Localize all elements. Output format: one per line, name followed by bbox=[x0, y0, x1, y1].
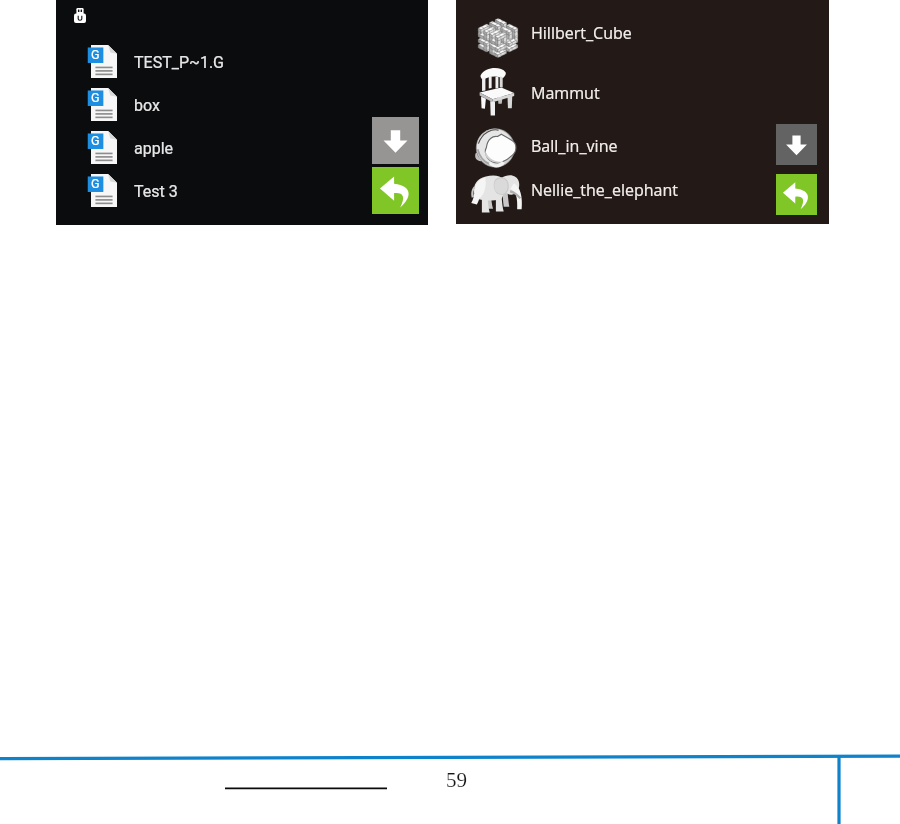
button[interactable]: Ball_in_vine bbox=[462, 118, 762, 178]
button[interactable]: Download bbox=[776, 124, 817, 165]
button[interactable]: Nellie_the_elephant bbox=[462, 162, 762, 218]
staticText: box bbox=[134, 96, 160, 115]
staticText: Hillbert_Cube bbox=[531, 22, 632, 44]
staticText: Test 3 bbox=[134, 182, 178, 201]
button[interactable]: G bbox=[76, 40, 336, 82]
button[interactable]: USB storage bbox=[74, 7, 86, 24]
button[interactable]: Mammut bbox=[462, 61, 762, 120]
button[interactable]: Download bbox=[372, 117, 419, 164]
staticText: Mammut bbox=[531, 82, 600, 104]
staticText: apple bbox=[134, 139, 174, 158]
staticText: G bbox=[91, 90, 100, 105]
staticText: G bbox=[91, 133, 100, 148]
button[interactable]: G bbox=[76, 169, 336, 211]
button[interactable]: G bbox=[76, 83, 336, 125]
button[interactable]: Back bbox=[372, 167, 419, 214]
button[interactable]: G bbox=[76, 126, 336, 168]
button[interactable]: Hillbert_Cube bbox=[462, 11, 762, 65]
staticText: 59 bbox=[446, 768, 467, 791]
button[interactable]: Back bbox=[776, 174, 817, 215]
staticText: G bbox=[91, 176, 100, 191]
staticText: Ball_in_vine bbox=[531, 135, 618, 157]
staticText: TEST_P~1.G bbox=[134, 53, 224, 72]
staticText: Nellie_the_elephant bbox=[531, 179, 678, 201]
staticText: G bbox=[91, 47, 100, 62]
